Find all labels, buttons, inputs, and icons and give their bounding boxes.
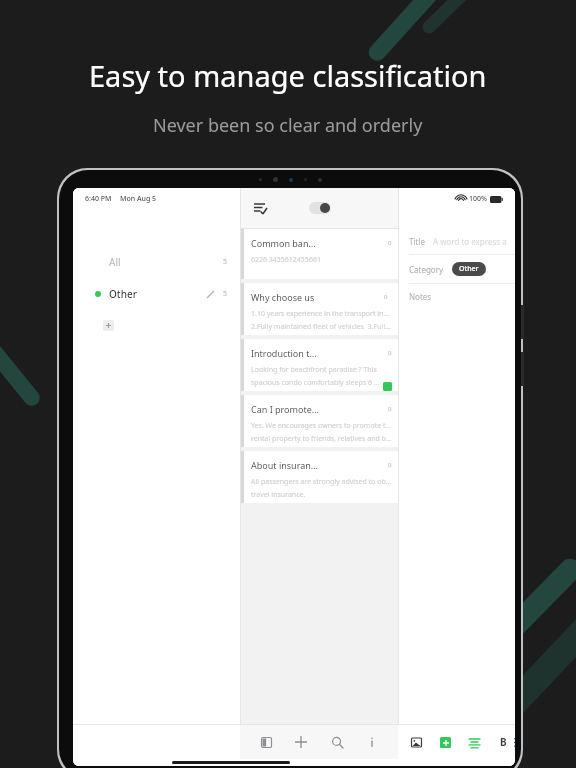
staticText: Yes. We encourages owners to promote the…	[251, 421, 392, 431]
staticText: rental property to friends, relatives an…	[251, 434, 392, 444]
staticText: 0	[384, 293, 388, 301]
button[interactable]: Align	[464, 732, 484, 752]
button[interactable]: Sidebar	[256, 732, 276, 752]
staticText: Category	[409, 264, 444, 275]
staticText: Title	[409, 236, 425, 247]
staticText: 2.Fully maintained fleet of vehicles 3.F…	[251, 322, 391, 332]
button[interactable]: Select	[251, 199, 269, 217]
staticText: 6226 3455612455661	[251, 255, 321, 265]
staticText: Other	[109, 287, 137, 301]
staticText: 100%	[469, 194, 487, 204]
button[interactable]: Search	[327, 732, 347, 752]
staticText: A word to express a	[433, 236, 507, 247]
staticText: 1.10 years experience in the transport i…	[251, 309, 392, 319]
button[interactable]: All	[73, 252, 240, 272]
button[interactable]: Add	[291, 732, 311, 752]
staticText: Other	[459, 264, 479, 274]
staticText: 5	[223, 257, 228, 267]
button[interactable]: Image	[406, 732, 426, 752]
staticText: Easy to manage classification	[89, 56, 487, 95]
staticText: All passengers are strongly advised to o…	[251, 477, 392, 487]
button[interactable]: Add category	[103, 320, 114, 331]
staticText: travel insurance.	[251, 490, 306, 500]
staticText: All	[109, 255, 121, 269]
other: Add category	[105, 322, 112, 329]
staticText: spacious condo comfortably sleeps 6 with…	[251, 378, 383, 388]
staticText: Common bank account	[251, 237, 319, 249]
staticText: Introduction to Beach Paradise	[251, 347, 319, 359]
other: Select	[254, 202, 267, 215]
staticText: About insurance	[251, 459, 319, 471]
button[interactable]: Introduction to Beach Paradise	[241, 339, 398, 391]
staticText: 5	[223, 289, 228, 299]
staticText: Can I promote and rent my own p...	[251, 403, 319, 415]
button[interactable]: Add block	[435, 732, 455, 752]
staticText: Why choose us	[251, 291, 315, 303]
staticText: Notes	[409, 291, 432, 302]
staticText: 0	[388, 239, 392, 247]
button[interactable]: Toggle	[309, 202, 331, 214]
staticText: 6:40 PM	[85, 194, 112, 204]
button[interactable]: Other	[73, 284, 240, 304]
button[interactable]: Bold	[493, 732, 513, 752]
staticText: B	[500, 735, 507, 749]
staticText: 0	[388, 405, 392, 413]
button[interactable]: Why choose us	[241, 283, 398, 335]
staticText: Looking for beachfront paradise ? This	[251, 365, 377, 375]
button[interactable]: Info	[362, 732, 382, 752]
staticText: Mon Aug 5	[120, 194, 157, 204]
button[interactable]: Can I promote and rent my own p...	[241, 395, 398, 447]
button[interactable]: Common bank account	[241, 229, 398, 279]
staticText: 0	[388, 461, 392, 469]
staticText: 0	[388, 349, 392, 357]
staticText: Never been so clear and orderly	[153, 113, 423, 138]
button[interactable]: Category	[409, 255, 515, 283]
button[interactable]: About insurance	[241, 451, 398, 503]
